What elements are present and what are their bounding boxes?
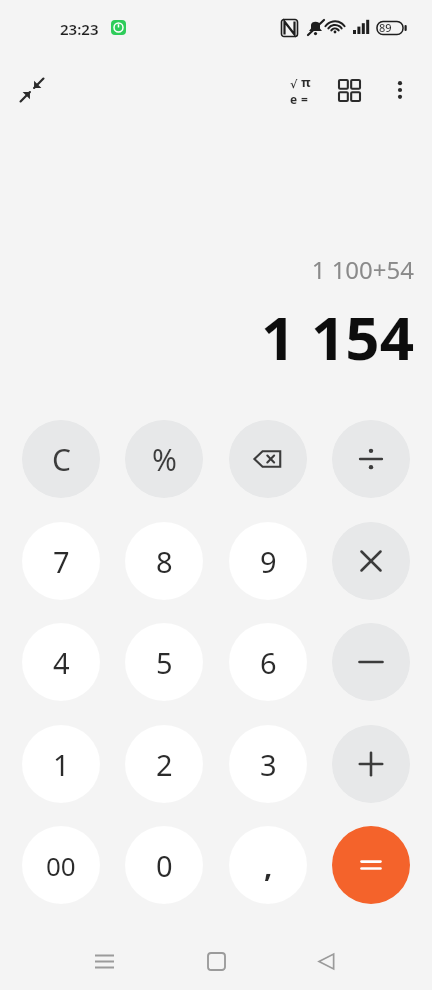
staticText: = [301,91,308,107]
staticText: 23:23 [60,19,99,39]
button[interactable]: Scientific [276,66,324,114]
staticText: √ [290,78,298,91]
button[interactable]: 4 [22,623,100,701]
staticText: 00 [46,848,76,883]
staticText: 8 [156,542,173,581]
staticText: 1 100+54 [0,253,414,286]
staticText: 7 [53,542,70,581]
button[interactable]: Collapse [8,66,56,114]
button[interactable]: 2 [125,725,203,803]
button[interactable]: Recent apps [84,941,124,981]
staticText: 6 [260,643,277,682]
button[interactable]: History [325,66,373,114]
button[interactable]: 5 [125,623,203,701]
staticText: 5 [156,643,173,682]
button[interactable]: 3 [229,725,307,803]
button[interactable]: Backspace [229,420,307,498]
button[interactable]: More options [376,66,424,114]
staticText: e [290,91,298,107]
button[interactable]: 1 [22,725,100,803]
staticText: , [264,846,273,885]
button[interactable]: 6 [229,623,307,701]
button[interactable]: 7 [22,522,100,600]
button[interactable]: 8 [125,522,203,600]
button[interactable]: 00 [22,826,100,904]
button[interactable]: % [125,420,203,498]
staticText: 89 [379,20,392,35]
staticText: 1 [53,745,70,784]
staticText: 3 [260,745,277,784]
button[interactable]: Multiply [332,522,410,600]
staticText: % [152,439,177,480]
staticText: 9 [260,542,277,581]
staticText: π [301,73,311,91]
button[interactable]: Back [306,941,346,981]
button[interactable]: Minus [332,623,410,701]
button[interactable]: Divide [332,420,410,498]
staticText: C [52,439,71,480]
staticText: 4 [53,643,70,682]
button[interactable]: , [229,826,307,904]
button[interactable]: Plus [332,725,410,803]
button[interactable]: 9 [229,522,307,600]
staticText: 1 154 [0,296,414,378]
staticText: 2 [156,745,173,784]
button[interactable]: Equals [332,826,410,904]
button[interactable]: Home [196,941,236,981]
staticText: 0 [156,846,173,885]
button[interactable]: 0 [125,826,203,904]
button[interactable]: C [22,420,100,498]
